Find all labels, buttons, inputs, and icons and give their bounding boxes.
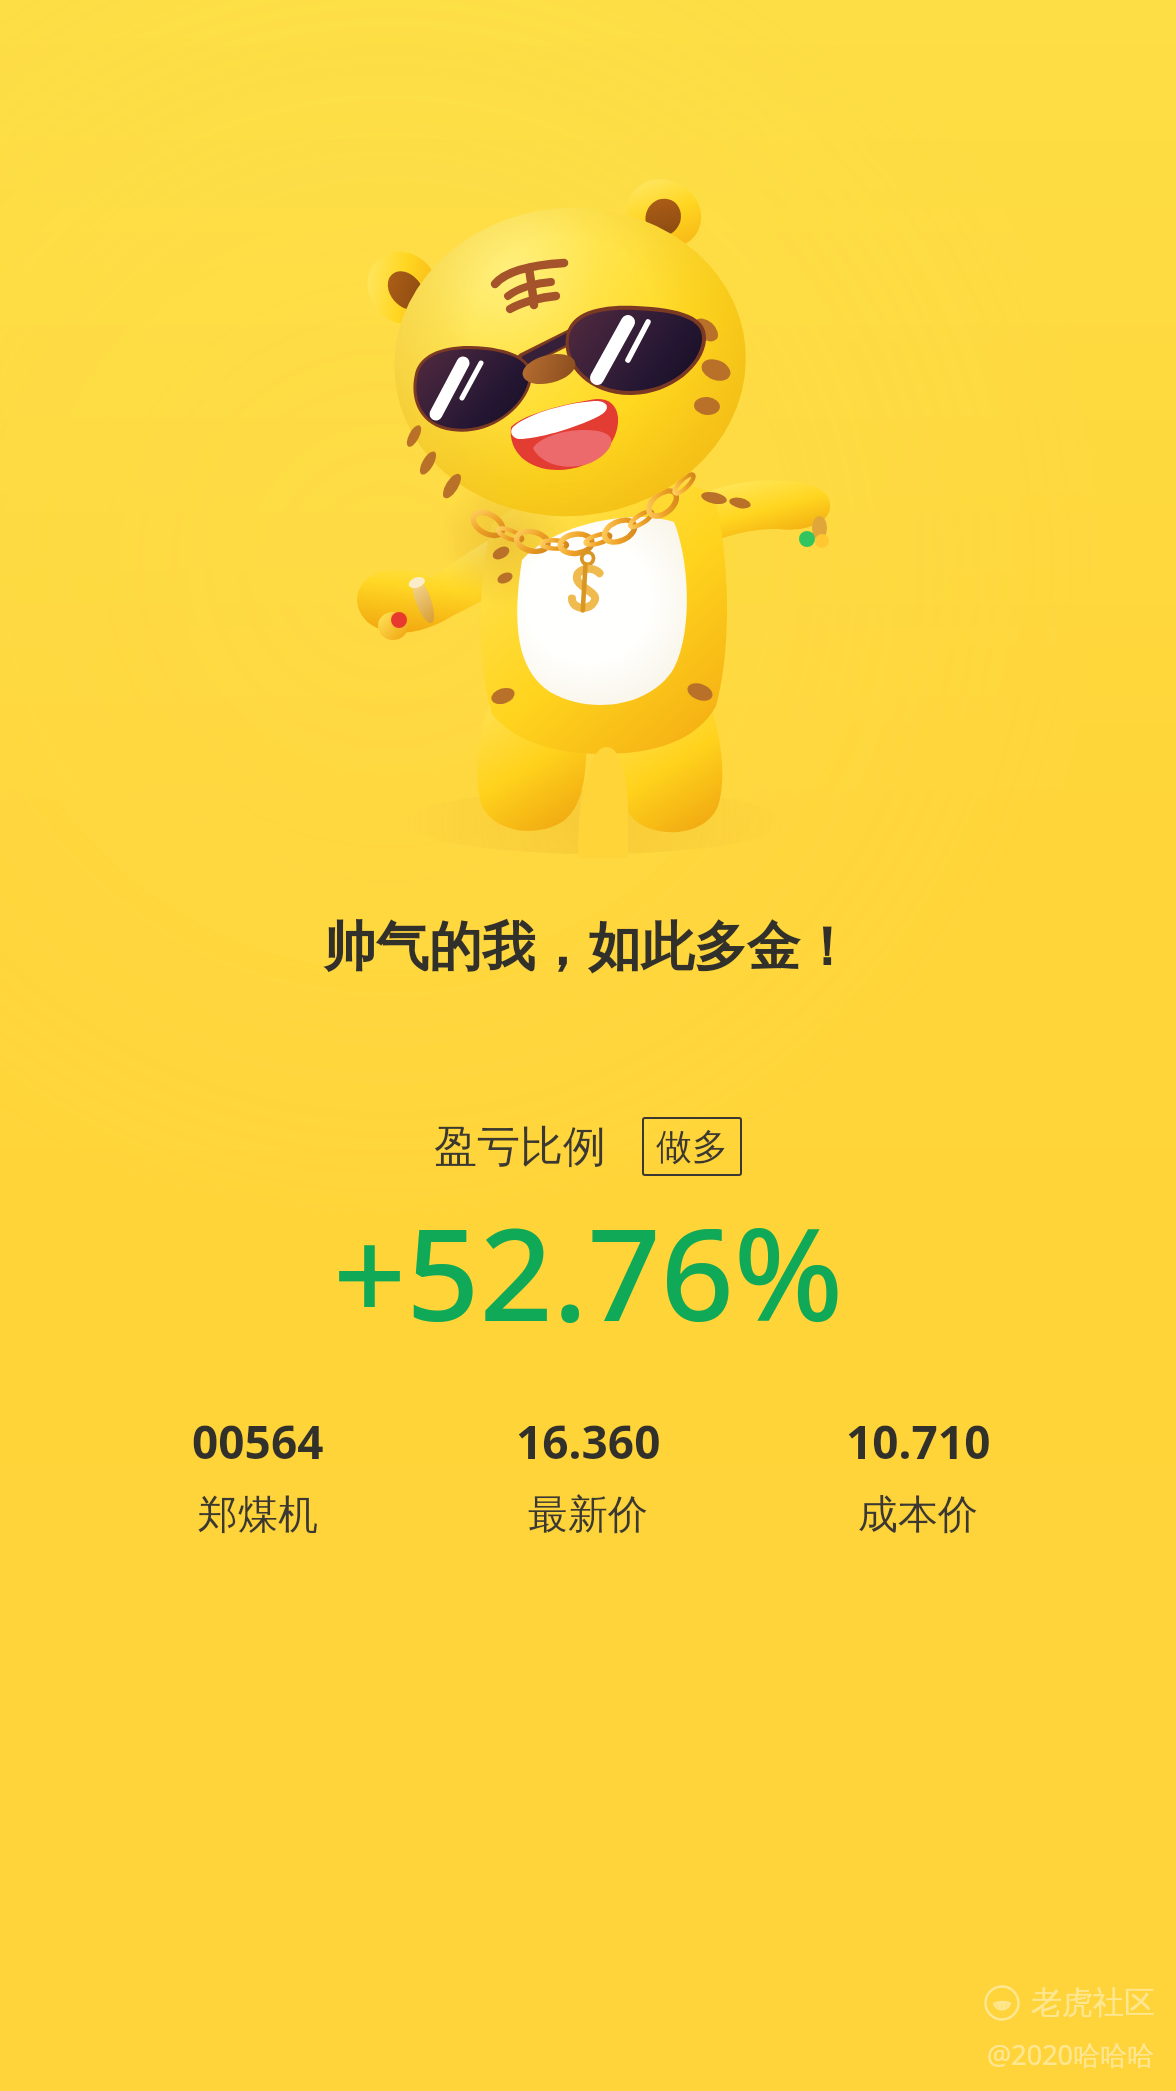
staticText: 最新价 xyxy=(528,1489,648,1539)
other: Tiger mascot illustration xyxy=(0,0,1176,2091)
staticText: @2020哈哈哈 xyxy=(987,2036,1155,2073)
button[interactable]: 做多 xyxy=(656,1124,728,1169)
staticText: 老虎社区 xyxy=(1031,1983,1155,2022)
staticText: 10.710 xyxy=(846,1410,991,1473)
button[interactable]: Tiger community logo xyxy=(984,1983,1176,2091)
other: Tiger community logo xyxy=(984,1985,1020,2021)
button[interactable]: 10.710 xyxy=(753,1410,1083,1539)
staticText: 帅气的我，如此多金！ xyxy=(323,914,853,981)
staticText: +52.76% xyxy=(333,1184,843,1358)
button[interactable]: 16.360 xyxy=(423,1410,753,1539)
button[interactable]: 00564 xyxy=(93,1410,423,1539)
staticText: 郑煤机 xyxy=(198,1489,318,1539)
staticText: 16.360 xyxy=(516,1410,661,1473)
staticText: 成本价 xyxy=(858,1489,978,1539)
staticText: 00564 xyxy=(192,1410,324,1473)
staticText: 盈亏比例 xyxy=(434,1120,606,1174)
staticText: 做多 xyxy=(656,1124,728,1169)
